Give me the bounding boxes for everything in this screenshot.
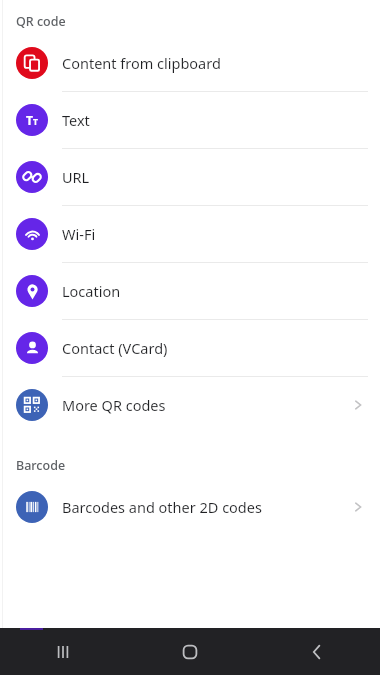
staticText: Content from clipboard [62, 53, 221, 73]
button[interactable]: Location [0, 263, 380, 320]
button[interactable]: URL [0, 149, 380, 206]
button[interactable]: T [0, 92, 380, 149]
staticText: Barcode [16, 457, 66, 474]
button[interactable]: Contact (VCard) [0, 320, 380, 377]
button[interactable]: Barcodes and other 2D codes [0, 479, 380, 535]
button[interactable]: Wi-Fi [0, 206, 380, 263]
staticText: T [26, 112, 33, 128]
button[interactable]: Home [126, 628, 253, 675]
staticText: Wi-Fi [62, 224, 96, 244]
staticText: Contact (VCard) [62, 338, 168, 358]
staticText: T [33, 116, 38, 128]
staticText: Location [62, 281, 121, 301]
staticText: QR code [16, 13, 66, 30]
staticText: Barcodes and other 2D codes [62, 497, 262, 517]
button[interactable]: More QR codes [0, 377, 380, 433]
staticText: URL [62, 167, 90, 187]
button[interactable]: Content from clipboard [0, 35, 380, 92]
staticText: More QR codes [62, 395, 166, 415]
button[interactable]: Recent apps [0, 628, 126, 675]
button[interactable]: Back [253, 628, 380, 675]
staticText: Text [62, 110, 90, 130]
